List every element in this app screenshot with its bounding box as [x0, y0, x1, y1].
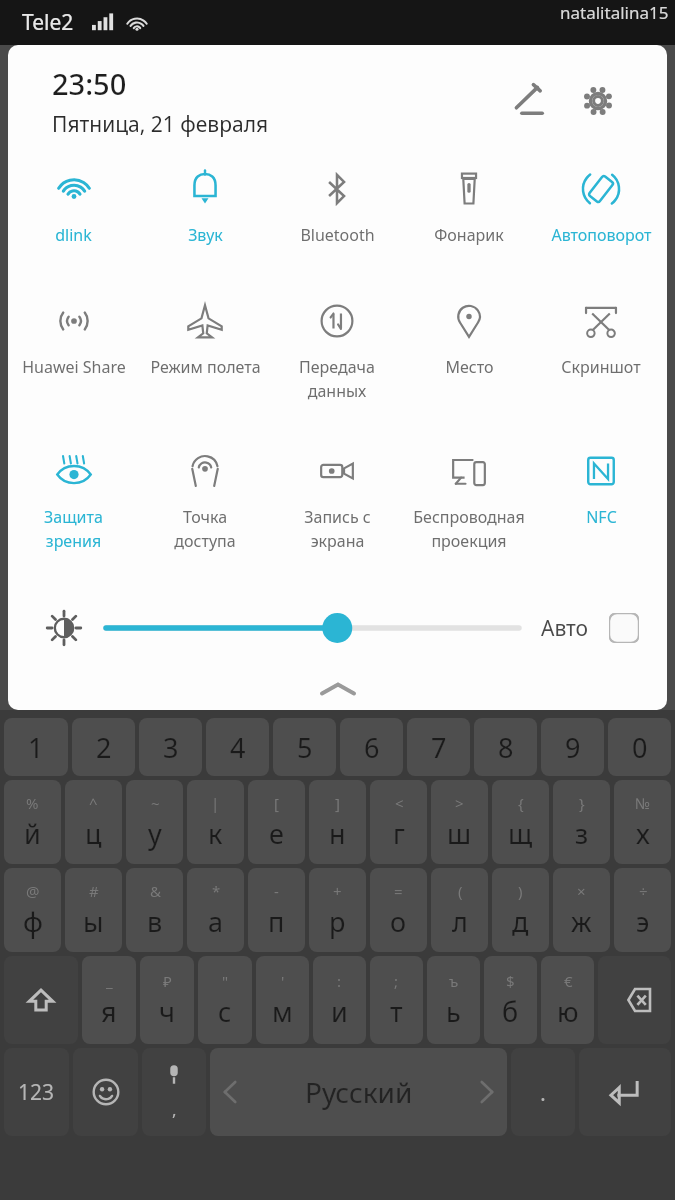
button[interactable]: [	[248, 780, 305, 864]
staticText: ₽	[163, 971, 172, 991]
button[interactable]: ]	[309, 780, 366, 864]
button[interactable]: Enter	[579, 1048, 671, 1136]
staticText: natalitalina15	[560, 1, 669, 24]
button[interactable]: Точка доступа	[139, 439, 271, 589]
staticText: 8	[498, 729, 514, 766]
button[interactable]: 6	[340, 718, 403, 776]
button[interactable]: Voice input	[142, 1048, 206, 1136]
staticText: 5	[297, 729, 313, 766]
button[interactable]: 9	[541, 718, 604, 776]
staticText: г	[393, 815, 405, 852]
staticText: ,	[172, 1098, 177, 1121]
button[interactable]: 7	[407, 718, 470, 776]
button[interactable]: Звук	[139, 157, 271, 289]
button[interactable]: ×	[553, 868, 610, 952]
staticText: NFC	[586, 506, 617, 528]
staticText: @	[26, 881, 40, 901]
staticText: )	[518, 881, 523, 901]
staticText: Huawei Share	[22, 356, 126, 378]
button[interactable]: Huawei Share	[8, 289, 139, 439]
staticText: ы	[83, 903, 104, 940]
button[interactable]: ^	[65, 780, 122, 864]
button[interactable]: <	[370, 780, 427, 864]
button[interactable]: 4	[206, 718, 269, 776]
button[interactable]: "	[198, 956, 252, 1044]
button[interactable]: Автоповорот	[535, 157, 667, 289]
button[interactable]: 0	[608, 718, 671, 776]
button[interactable]: -	[248, 868, 305, 952]
button[interactable]: NFC	[535, 439, 667, 589]
button[interactable]: Backspace	[598, 956, 671, 1044]
button[interactable]: Беспроводная проекция	[403, 439, 535, 589]
button[interactable]: (	[431, 868, 488, 952]
button[interactable]: Edit	[505, 76, 555, 126]
button[interactable]: +	[309, 868, 366, 952]
button[interactable]: ÷	[614, 868, 671, 952]
staticText: Скриншот	[561, 356, 641, 378]
staticText: ъ	[449, 971, 459, 991]
button[interactable]: )	[492, 868, 549, 952]
button[interactable]: №	[614, 780, 671, 864]
button[interactable]: Передача данных	[271, 289, 403, 439]
button[interactable]: Режим полета	[139, 289, 271, 439]
button[interactable]: Русский	[210, 1048, 507, 1136]
button[interactable]: Защита зрения	[8, 439, 139, 589]
button[interactable]: Запись с экрана	[271, 439, 403, 589]
button[interactable]: 5	[273, 718, 336, 776]
button[interactable]: *	[187, 868, 244, 952]
staticText: у	[148, 815, 162, 852]
button[interactable]: >	[431, 780, 488, 864]
button[interactable]: €	[541, 956, 594, 1044]
button[interactable]: Место	[403, 289, 535, 439]
button[interactable]: $	[484, 956, 537, 1044]
button[interactable]: #	[65, 868, 122, 952]
staticText: 9	[565, 729, 581, 766]
staticText: ÷	[639, 881, 648, 901]
staticText: Tele2	[22, 8, 74, 37]
staticText: [	[274, 793, 279, 813]
button[interactable]: Скриншот	[535, 289, 667, 439]
button[interactable]: |	[187, 780, 244, 864]
button[interactable]: 8	[474, 718, 537, 776]
button[interactable]: .	[511, 1048, 575, 1136]
button[interactable]: =	[370, 868, 427, 952]
button[interactable]: Фонарик	[403, 157, 535, 289]
button[interactable]: }	[553, 780, 610, 864]
button[interactable]: Bluetooth	[271, 157, 403, 289]
button[interactable]: Settings	[573, 76, 623, 126]
button[interactable]: &	[126, 868, 183, 952]
button[interactable]: :	[313, 956, 366, 1044]
button[interactable]: Emoji	[73, 1048, 138, 1136]
button[interactable]: %	[4, 780, 61, 864]
staticText: й	[24, 815, 41, 852]
button[interactable]: {	[492, 780, 549, 864]
button[interactable]: dlink	[8, 157, 139, 289]
button[interactable]: ;	[370, 956, 423, 1044]
button[interactable]: ъ	[427, 956, 480, 1044]
button[interactable]: Shift	[4, 956, 78, 1044]
staticText: _	[106, 971, 113, 991]
staticText: =	[394, 881, 403, 901]
button[interactable]: Brightness	[106, 608, 519, 648]
staticText: 1	[28, 729, 44, 766]
staticText: 123	[18, 1078, 55, 1107]
staticText: Передача данных	[299, 356, 375, 402]
staticText: э	[636, 903, 650, 940]
button[interactable]: Collapse	[8, 667, 667, 710]
button[interactable]: 2	[72, 718, 135, 776]
button[interactable]: 3	[139, 718, 202, 776]
button[interactable]: ₽	[140, 956, 194, 1044]
staticText: р	[329, 903, 346, 940]
staticText: Пятница, 21 февраля	[52, 110, 269, 139]
button[interactable]: _	[82, 956, 136, 1044]
button[interactable]: @	[4, 868, 61, 952]
button[interactable]: ~	[126, 780, 183, 864]
button[interactable]: 123	[4, 1048, 69, 1136]
staticText: Беспроводная проекция	[413, 506, 525, 552]
button[interactable]: '	[256, 956, 309, 1044]
staticText: а	[208, 903, 224, 940]
staticText: &	[150, 881, 161, 901]
button[interactable]: Авто	[541, 613, 639, 643]
staticText: щ	[508, 815, 533, 852]
button[interactable]: 1	[4, 718, 68, 776]
